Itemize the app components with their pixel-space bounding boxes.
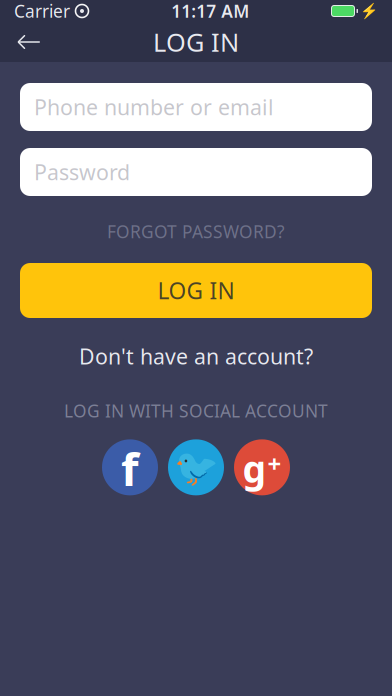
staticText: 🐦 [173, 447, 218, 488]
staticText: ⚡ [360, 3, 378, 19]
staticText: Password [34, 158, 130, 186]
button[interactable]: Log in with Twitter [168, 439, 224, 495]
staticText: LOG IN [157, 275, 234, 306]
staticText: LOG IN WITH SOCIAL ACCOUNT [64, 399, 328, 422]
button[interactable]: Log in with Facebook [102, 439, 158, 495]
button[interactable]: Back [6, 22, 52, 62]
staticText: + [267, 447, 281, 479]
staticText: f [121, 438, 139, 498]
staticText: Don't have an account? [79, 342, 313, 370]
staticText: FORGOT PASSWORD? [107, 220, 285, 243]
staticText: Carrier [14, 0, 70, 22]
staticText: Phone number or email [34, 93, 274, 121]
staticText: 11:17 AM [171, 0, 249, 22]
button[interactable]: FORGOT PASSWORD? [20, 211, 372, 252]
button[interactable]: Don't have an account? [20, 334, 372, 378]
button[interactable]: Log in with Google Plus [234, 439, 290, 495]
staticText: LOG IN [153, 25, 239, 59]
button[interactable]: LOG IN [20, 263, 372, 318]
staticText: g [242, 444, 266, 493]
